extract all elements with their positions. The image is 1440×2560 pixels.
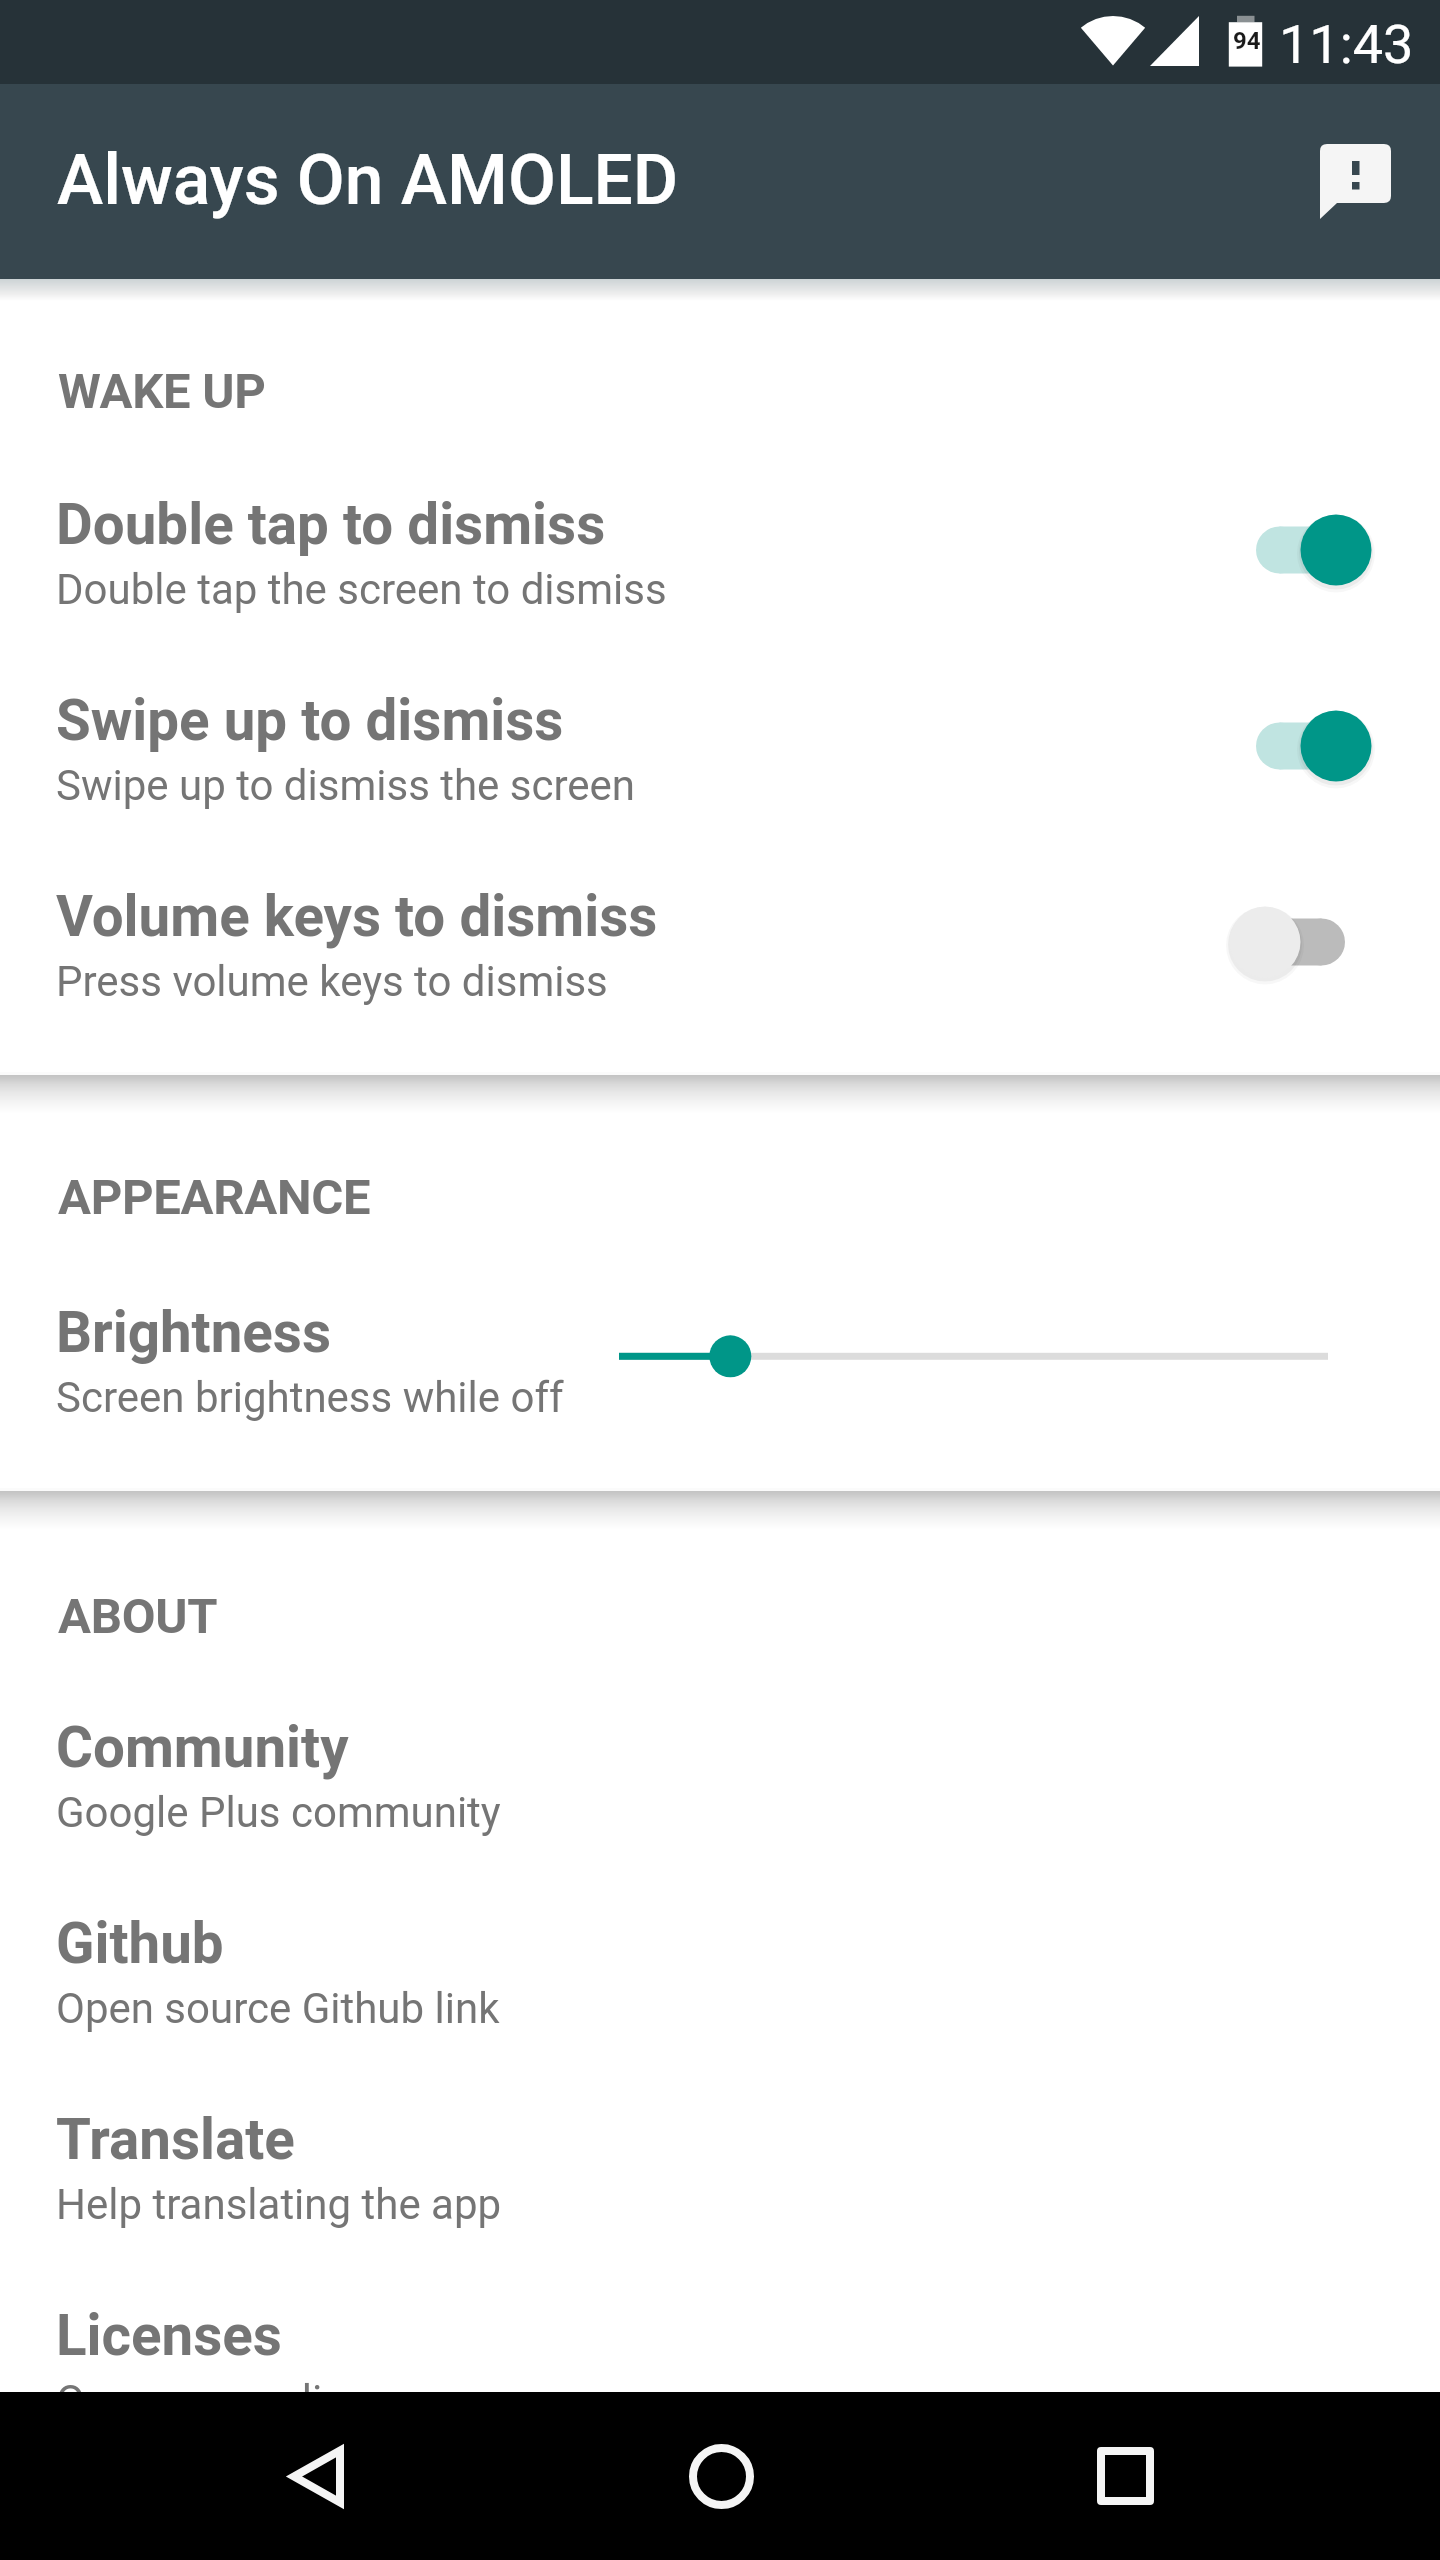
button[interactable]: Recent apps xyxy=(1036,2392,1216,2560)
staticText: Swipe up to dismiss xyxy=(56,688,564,754)
button[interactable]: Volume keys to dismiss xyxy=(0,848,1440,1044)
button[interactable]: Licenses xyxy=(0,2267,1440,2463)
staticText: Swipe up to dismiss the screen xyxy=(56,761,636,810)
button[interactable]: Announcements xyxy=(1296,84,1416,279)
staticText: Open source Github link xyxy=(56,1984,500,2033)
staticText: 11:43 xyxy=(1279,13,1414,76)
staticText: APPEARANCE xyxy=(58,1169,371,1226)
staticText: Double tap the screen to dismiss xyxy=(56,565,667,614)
staticText: ABOUT xyxy=(58,1588,218,1645)
button[interactable]: Home xyxy=(631,2392,811,2560)
staticText: Open source licenses xyxy=(56,2376,456,2425)
staticText: Help translating the app xyxy=(56,2180,502,2229)
staticText: Screen brightness while off xyxy=(56,1373,564,1422)
button[interactable]: Swipe up to dismiss xyxy=(0,652,1440,848)
staticText: Translate xyxy=(56,2107,295,2173)
staticText: Brightness xyxy=(56,1300,332,1366)
button[interactable]: Toggle Double tap to dismiss xyxy=(1240,490,1380,610)
button[interactable]: Brightness xyxy=(0,1264,1440,1460)
staticText: Volume keys to dismiss xyxy=(56,884,658,950)
button[interactable]: Github xyxy=(0,1875,1440,2071)
button[interactable]: Translate xyxy=(0,2071,1440,2267)
staticText: Google Plus community xyxy=(56,1788,501,1837)
button[interactable]: Toggle Volume keys to dismiss xyxy=(1240,882,1380,1002)
button[interactable]: Community xyxy=(0,1679,1440,1875)
staticText: Double tap to dismiss xyxy=(56,492,606,558)
staticText: Licenses xyxy=(56,2303,282,2369)
staticText: Github xyxy=(56,1911,224,1977)
staticText: Community xyxy=(56,1715,349,1781)
button[interactable]: Double tap to dismiss xyxy=(0,456,1440,652)
staticText: 94 xyxy=(1233,27,1261,55)
staticText: WAKE UP xyxy=(58,363,266,420)
button[interactable]: Toggle Swipe up to dismiss xyxy=(1240,686,1380,806)
button[interactable]: Brightness slider xyxy=(600,1320,1360,1392)
staticText: Always On AMOLED xyxy=(57,140,679,221)
staticText: Press volume keys to dismiss xyxy=(56,957,608,1006)
button[interactable]: Back xyxy=(226,2392,406,2560)
